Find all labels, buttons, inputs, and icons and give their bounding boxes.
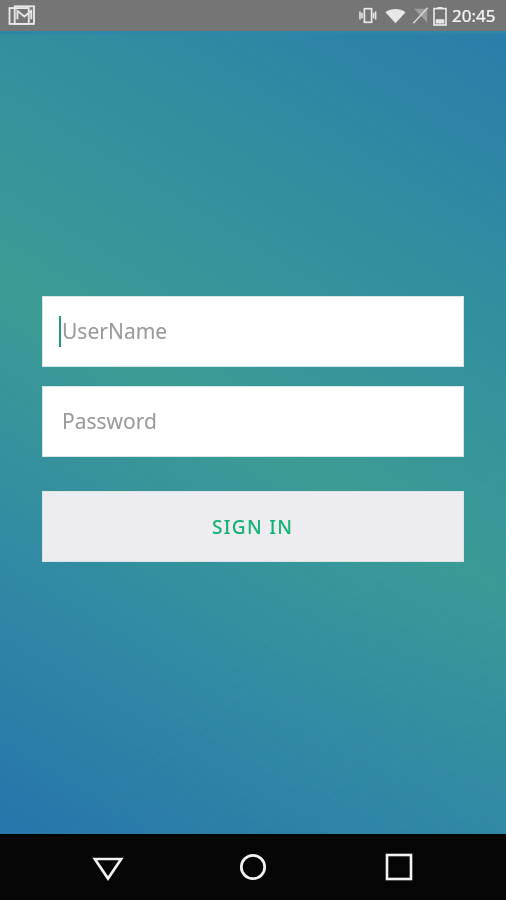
button[interactable]: UserName [42,296,464,367]
staticText: 20:45 [452,4,496,27]
button[interactable]: Password [42,386,464,457]
staticText: Password [62,407,157,436]
button[interactable]: Home [215,834,291,900]
staticText: UserName [62,317,168,346]
button[interactable]: SIGN IN [42,491,464,562]
button[interactable]: Recent apps [361,834,437,900]
staticText: SIGN IN [212,514,294,540]
button[interactable]: Back [70,834,146,900]
